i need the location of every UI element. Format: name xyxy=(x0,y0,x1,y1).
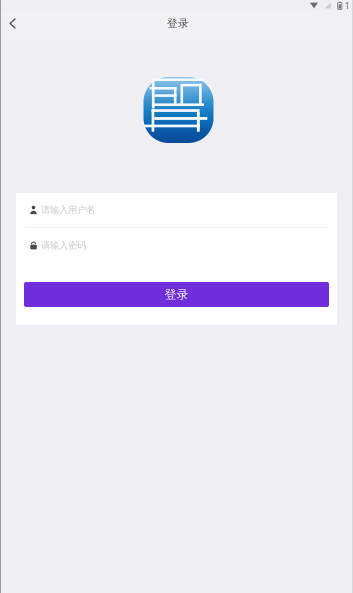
button[interactable]: 登录 xyxy=(24,282,329,307)
staticText: 请输入用户名 xyxy=(41,204,95,216)
button[interactable]: 请输入用户名 xyxy=(16,193,337,227)
button[interactable]: Back xyxy=(0,14,26,37)
staticText: 登录 xyxy=(164,287,188,302)
staticText: 1 xyxy=(344,0,349,12)
staticText: 请输入密码 xyxy=(41,240,86,251)
staticText: 登录 xyxy=(167,17,189,30)
button[interactable]: 请输入密码 xyxy=(16,228,337,263)
